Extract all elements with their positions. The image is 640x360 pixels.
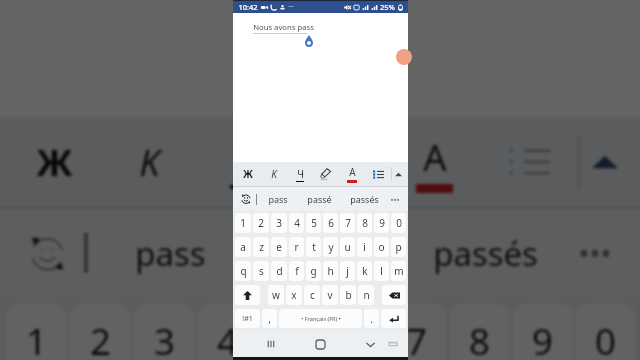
- button[interactable]: k: [357, 261, 372, 281]
- button[interactable]: o: [374, 237, 389, 257]
- button[interactable]: Text colour: [339, 162, 365, 186]
- staticText: t: [312, 240, 316, 254]
- button[interactable]: Backspace: [382, 285, 406, 305]
- button[interactable]: Bulleted list: [365, 162, 391, 186]
- button[interactable]: 0: [391, 213, 406, 233]
- button[interactable]: c: [304, 285, 320, 305]
- button[interactable]: q: [235, 261, 251, 281]
- button[interactable]: n: [358, 285, 374, 305]
- staticText: passé: [307, 193, 332, 205]
- button[interactable]: a: [235, 237, 251, 257]
- button[interactable]: 9: [513, 304, 572, 360]
- button[interactable]: Format K: [261, 162, 287, 186]
- staticText: 7: [345, 216, 351, 230]
- staticText: x: [291, 288, 297, 302]
- button[interactable]: p: [391, 237, 406, 257]
- button[interactable]: 6: [323, 213, 338, 233]
- button[interactable]: !#1: [235, 309, 260, 328]
- button[interactable]: ,: [262, 309, 277, 328]
- button[interactable]: Shift: [235, 285, 260, 305]
- button[interactable]: Expand toolbar: [392, 162, 405, 186]
- staticText: !#1: [242, 314, 253, 324]
- staticText: 25%: [380, 2, 395, 12]
- button[interactable]: r: [289, 237, 304, 257]
- staticText: ,: [268, 312, 271, 326]
- button[interactable]: v: [322, 285, 338, 305]
- button[interactable]: 8: [357, 213, 372, 233]
- button[interactable]: Format Ч: [197, 118, 292, 206]
- button[interactable]: f: [289, 261, 304, 281]
- staticText: f: [295, 264, 299, 278]
- button[interactable]: Highlight: [313, 162, 339, 186]
- button[interactable]: m: [391, 261, 406, 281]
- staticText: 4: [294, 216, 300, 230]
- button[interactable]: b: [340, 285, 356, 305]
- button[interactable]: t: [306, 237, 321, 257]
- button[interactable]: Highlight: [292, 118, 387, 206]
- staticText: q: [240, 264, 247, 278]
- button[interactable]: 0: [576, 304, 635, 360]
- button[interactable]: Expand toolbar: [581, 118, 629, 206]
- staticText: K: [271, 167, 277, 181]
- button[interactable]: Format Ж: [7, 118, 102, 206]
- button[interactable]: w: [268, 285, 284, 305]
- staticText: 5: [280, 316, 301, 360]
- staticText: 3: [276, 216, 282, 230]
- button[interactable]: Text colour: [387, 118, 482, 206]
- staticText: 9: [379, 216, 385, 230]
- button[interactable]: g: [306, 261, 321, 281]
- button[interactable]: z: [253, 237, 269, 257]
- button[interactable]: Format Ж: [235, 162, 261, 186]
- button[interactable]: 4: [289, 213, 304, 233]
- button[interactable]: 8: [450, 304, 509, 360]
- button[interactable]: Enter: [381, 309, 406, 328]
- button[interactable]: 7: [387, 304, 446, 360]
- button[interactable]: x: [286, 285, 302, 305]
- button[interactable]: 4: [198, 304, 257, 360]
- button[interactable]: Home: [312, 336, 328, 352]
- button[interactable]: New note: [396, 49, 412, 65]
- button[interactable]: Format K: [102, 118, 197, 206]
- staticText: j: [346, 264, 349, 278]
- button[interactable]: j: [340, 261, 355, 281]
- button[interactable]: e: [271, 237, 287, 257]
- button[interactable]: h: [323, 261, 338, 281]
- button[interactable]: l: [374, 261, 389, 281]
- button[interactable]: s: [253, 261, 269, 281]
- button[interactable]: 3: [134, 304, 194, 360]
- button[interactable]: 1: [235, 213, 251, 233]
- button[interactable]: 1: [6, 304, 66, 360]
- button[interactable]: .: [364, 309, 379, 328]
- staticText: w: [272, 288, 280, 302]
- button[interactable]: Hide keyboard: [362, 336, 378, 352]
- staticText: 3: [154, 316, 175, 360]
- button[interactable]: 9: [374, 213, 389, 233]
- button[interactable]: Bulleted list: [482, 118, 577, 206]
- button[interactable]: 2: [253, 213, 269, 233]
- staticText: 5: [311, 216, 317, 230]
- button[interactable]: i: [357, 237, 372, 257]
- staticText: s: [259, 264, 264, 278]
- staticText: d: [276, 264, 283, 278]
- staticText: b: [345, 288, 352, 302]
- button[interactable]: Emoji: [238, 191, 254, 207]
- button[interactable]: 7: [340, 213, 355, 233]
- button[interactable]: d: [271, 261, 287, 281]
- button[interactable]: Recents: [263, 336, 279, 352]
- button[interactable]: 6: [324, 304, 383, 360]
- staticText: 8: [469, 316, 490, 360]
- button[interactable]: 5: [261, 304, 320, 360]
- button[interactable]: Emoji: [18, 224, 77, 283]
- staticText: 0: [595, 316, 616, 360]
- staticText: h: [327, 264, 334, 278]
- button[interactable]: • Français (FR) •: [279, 309, 362, 328]
- staticText: g: [310, 264, 317, 278]
- button[interactable]: 5: [306, 213, 321, 233]
- button[interactable]: y: [323, 237, 338, 257]
- button[interactable]: u: [340, 237, 355, 257]
- button[interactable]: Keyboard layout: [386, 337, 400, 351]
- button[interactable]: 3: [271, 213, 287, 233]
- staticText: 6: [343, 316, 364, 360]
- button[interactable]: 2: [70, 304, 130, 360]
- button[interactable]: Format Ч: [287, 162, 313, 186]
